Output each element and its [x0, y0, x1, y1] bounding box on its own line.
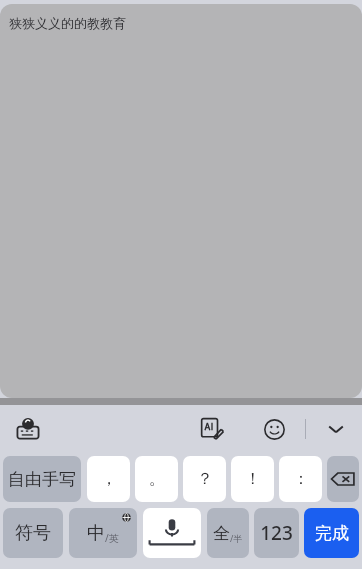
button[interactable]: 。	[135, 456, 178, 502]
staticText: 符号	[15, 522, 51, 545]
button[interactable]: 123	[254, 508, 299, 558]
staticText: 123	[260, 520, 293, 546]
staticText: /英	[105, 531, 119, 545]
button[interactable]: ：	[279, 456, 322, 502]
button[interactable]: Delete	[327, 456, 359, 502]
staticText: ：	[293, 469, 309, 489]
button[interactable]: ，	[87, 456, 130, 502]
staticText: ，	[101, 469, 117, 489]
staticText: 自由手写	[8, 469, 76, 490]
staticText: 狭狭义义的的教教育	[9, 15, 126, 31]
staticText: ！	[245, 469, 261, 489]
button[interactable]: 符号	[3, 508, 63, 558]
button[interactable]: 中	[69, 508, 137, 558]
staticText: 完成	[315, 523, 349, 544]
staticText: ？	[197, 469, 213, 489]
button[interactable]: Switch input language	[8, 409, 48, 449]
button[interactable]: Hide keyboard	[316, 409, 356, 449]
button[interactable]: ！	[231, 456, 274, 502]
staticText: 。	[149, 469, 165, 489]
staticText: 全	[213, 523, 230, 544]
staticText: 中	[87, 522, 105, 545]
button[interactable]: 自由手写	[3, 456, 81, 502]
button[interactable]: 完成	[304, 508, 359, 558]
button[interactable]: AI writing	[192, 409, 232, 449]
button[interactable]: Space / Voice input	[143, 508, 201, 558]
staticText: /半	[230, 532, 243, 544]
button[interactable]: ？	[183, 456, 226, 502]
button[interactable]: 全	[207, 508, 249, 558]
button[interactable]: Emoji	[254, 409, 294, 449]
